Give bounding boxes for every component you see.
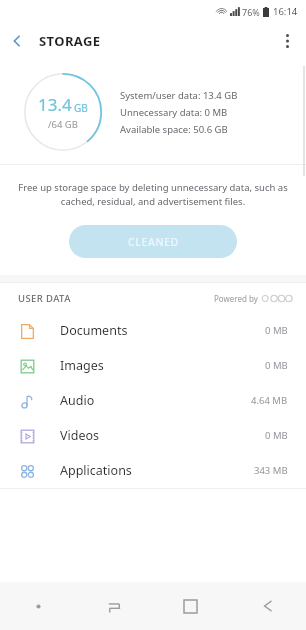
button[interactable]: Applications	[0, 453, 306, 488]
staticText: Applications	[60, 462, 132, 479]
button[interactable]: Back	[0, 24, 34, 58]
staticText: Images	[60, 357, 104, 374]
staticText: USER DATA	[18, 292, 71, 305]
staticText: System/user data: 13.4 GB	[120, 89, 238, 102]
button[interactable]: Home	[152, 582, 229, 630]
button[interactable]: Images	[0, 348, 306, 383]
staticText: CLEANED	[128, 235, 179, 249]
button[interactable]: CLEANED	[69, 225, 237, 258]
staticText: 0 MB	[265, 324, 288, 337]
staticText: 343 MB	[254, 464, 288, 477]
staticText: STORAGE	[39, 32, 101, 50]
button[interactable]: Back	[229, 582, 306, 630]
staticText: /64 GB	[48, 118, 78, 131]
staticText: Documents	[60, 322, 128, 339]
staticText: Powered by	[214, 293, 258, 304]
button[interactable]: Assistant	[0, 582, 76, 630]
staticText: Videos	[60, 427, 100, 444]
staticText: 16:14	[273, 5, 298, 18]
button[interactable]: Recents	[76, 582, 152, 630]
staticText: GB	[74, 101, 88, 115]
staticText: Free up storage space by deleting unnece…	[18, 181, 288, 208]
button[interactable]: More options	[268, 22, 306, 60]
staticText: 0 MB	[265, 359, 288, 372]
staticText: 0 MB	[265, 429, 288, 442]
staticText: 76%	[242, 6, 260, 18]
staticText: Audio	[60, 392, 95, 409]
staticText: Unnecessary data: 0 MB	[120, 106, 228, 119]
button[interactable]: Videos	[0, 418, 306, 453]
staticText: Available space: 50.6 GB	[120, 123, 228, 136]
button[interactable]: Audio	[0, 383, 306, 418]
staticText: 13.4	[38, 93, 72, 116]
staticText: 4.64 MB	[251, 394, 288, 407]
button[interactable]: Documents	[0, 313, 306, 348]
